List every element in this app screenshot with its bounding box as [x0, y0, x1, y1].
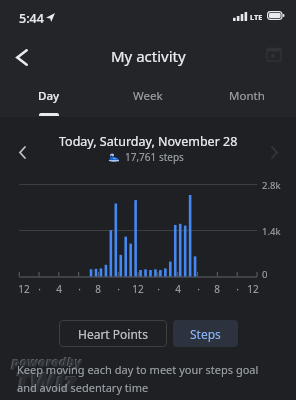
staticText: TWiz [14, 363, 76, 398]
staticText: Keep moving each day to meet your steps … [17, 362, 259, 395]
button[interactable]: Heart Points [59, 320, 167, 347]
staticText: 12 [132, 282, 144, 296]
staticText: · [117, 282, 120, 296]
button[interactable]: Back [4, 39, 40, 75]
staticText: 4 [56, 282, 62, 296]
staticText: 12 [18, 282, 30, 296]
staticText: · [236, 282, 239, 296]
staticText: TWiz [16, 364, 78, 399]
staticText: Month [229, 88, 265, 104]
button[interactable]: Steps [173, 320, 238, 347]
button[interactable]: Day [0, 82, 98, 118]
button[interactable]: Week [98, 82, 197, 118]
button[interactable]: Month [197, 82, 296, 118]
staticText: 1.4k [262, 225, 281, 238]
staticText: Steps [190, 326, 221, 342]
button[interactable]: Next day [256, 134, 292, 170]
staticText: 17,761 steps [125, 150, 184, 164]
staticText: Day [38, 88, 60, 104]
staticText: My activity [111, 46, 186, 66]
staticText: · [78, 282, 81, 296]
staticText: Week [133, 88, 163, 104]
staticText: · [157, 282, 160, 296]
staticText: 4 [175, 282, 181, 296]
staticText: · [197, 282, 200, 296]
staticText: poweredby [11, 352, 82, 370]
staticText: LTE [250, 12, 263, 22]
staticText: · [38, 282, 41, 296]
button[interactable]: Previous day [4, 134, 40, 170]
staticText: Heart Points [78, 326, 148, 342]
staticText: 5:44 [19, 10, 44, 27]
staticText: poweredby [12, 353, 83, 371]
staticText: 8 [214, 282, 220, 296]
staticText: 2.8k [262, 179, 281, 192]
staticText: 0 [262, 268, 268, 281]
button[interactable]: Calendar [256, 36, 292, 72]
staticText: 12 [247, 282, 259, 296]
staticText: Today, Saturday, November 28 [59, 133, 238, 150]
staticText: 8 [95, 282, 101, 296]
